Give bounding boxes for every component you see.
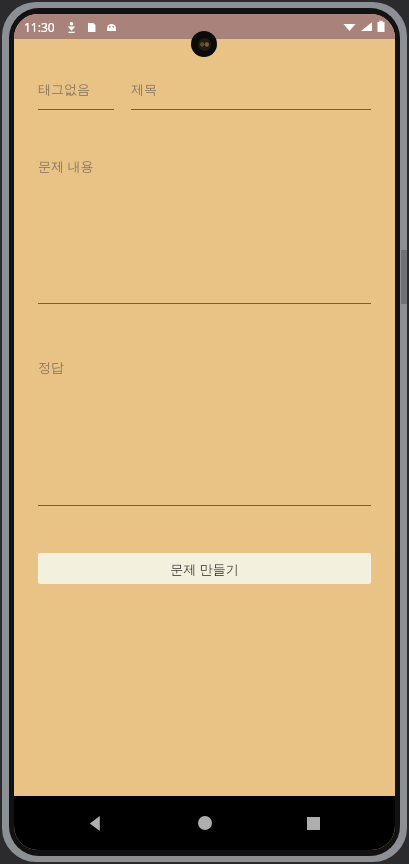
staticText: 11:30 (24, 19, 55, 35)
staticText: 제목 (131, 81, 157, 97)
staticText: 정답 (38, 359, 64, 375)
button[interactable]: Back (69, 796, 123, 850)
button[interactable]: 문제 만들기 (38, 553, 371, 584)
button[interactable]: 태그없음 (38, 81, 114, 110)
button[interactable]: 제목 (131, 81, 371, 110)
button[interactable]: 문제 내용 (38, 157, 371, 304)
button[interactable]: Home (178, 796, 232, 850)
staticText: 문제 만들기 (170, 560, 239, 578)
button[interactable]: 정답 (38, 359, 371, 506)
staticText: 문제 내용 (38, 157, 94, 175)
button[interactable]: Recent apps (286, 796, 340, 850)
staticText: 태그없음 (38, 81, 90, 97)
